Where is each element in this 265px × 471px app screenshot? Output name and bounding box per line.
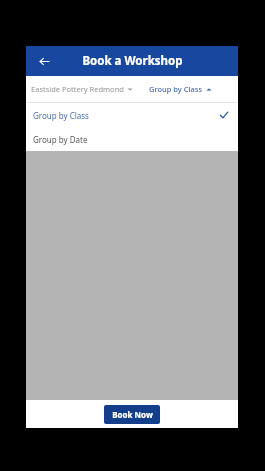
- staticText: Eastside Pottery Redmond: [31, 84, 124, 94]
- staticText: Group by Date: [33, 134, 88, 145]
- button[interactable]: Back: [33, 50, 55, 72]
- button[interactable]: Eastside Pottery Redmond: [31, 84, 133, 94]
- staticText: Book Now: [112, 409, 153, 420]
- staticText: Group by Class: [149, 84, 203, 94]
- button[interactable]: Group by Class: [149, 84, 212, 94]
- button[interactable]: Book Now: [104, 405, 160, 424]
- button[interactable]: Group by Date: [26, 127, 238, 151]
- staticText: Group by Class: [33, 110, 89, 121]
- button[interactable]: Group by Class: [26, 103, 238, 127]
- staticText: Book a Workshop: [82, 53, 183, 69]
